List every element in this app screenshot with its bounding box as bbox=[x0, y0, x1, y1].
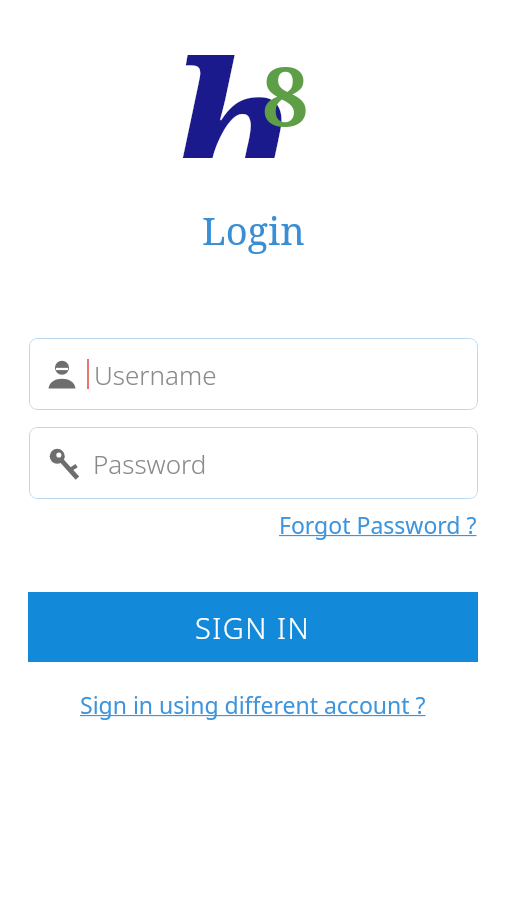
button[interactable]: Password bbox=[29, 427, 478, 499]
button[interactable]: Username bbox=[29, 338, 478, 410]
staticText: Login bbox=[202, 204, 305, 256]
staticText: Username bbox=[94, 357, 217, 392]
staticText: SIGN IN bbox=[195, 608, 311, 647]
staticText: 8 bbox=[262, 38, 309, 150]
staticText: Forgot Password ? bbox=[279, 509, 477, 540]
staticText: h bbox=[169, 0, 297, 158]
button[interactable]: SIGN IN bbox=[28, 592, 478, 662]
button[interactable]: Forgot Password ? bbox=[279, 509, 477, 540]
button[interactable]: Sign in using different account ? bbox=[80, 689, 426, 720]
staticText: Password bbox=[93, 446, 207, 481]
staticText: Sign in using different account ? bbox=[80, 689, 426, 720]
